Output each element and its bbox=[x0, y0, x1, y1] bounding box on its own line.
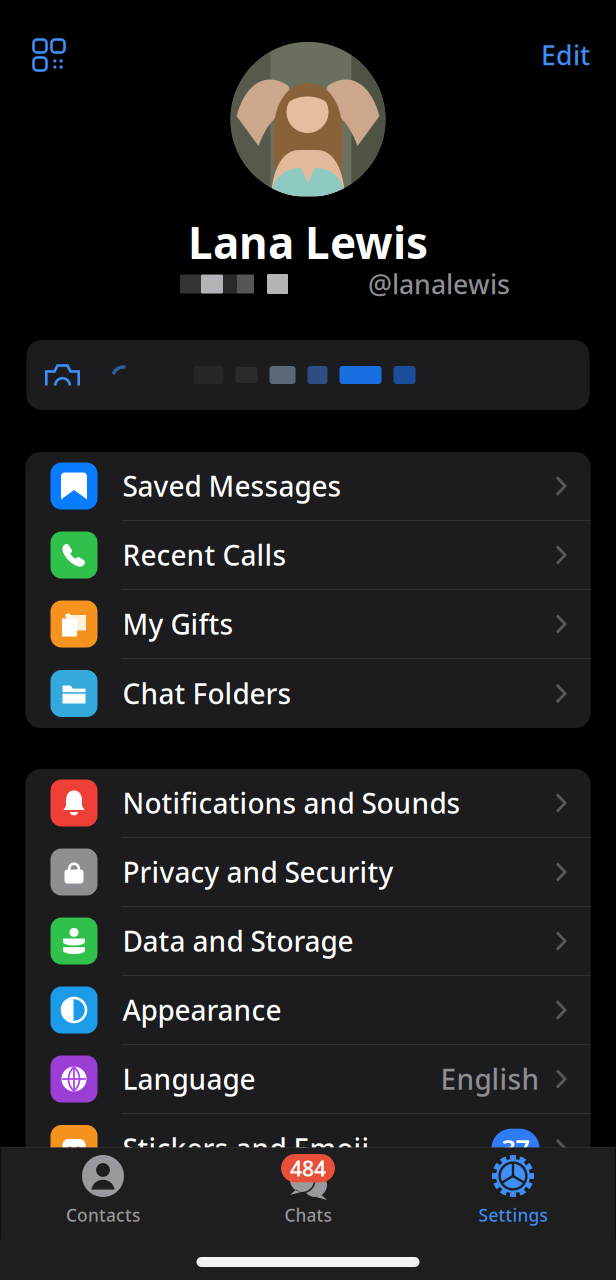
button[interactable]: Chat Folders bbox=[25, 659, 590, 728]
button[interactable]: My Gifts bbox=[25, 590, 590, 659]
button[interactable]: Settings bbox=[410, 1154, 615, 1239]
staticText: Language bbox=[122, 1060, 255, 1098]
staticText: @lanalewis bbox=[368, 266, 510, 302]
button[interactable]: Profile photo bbox=[230, 42, 385, 197]
button[interactable]: Language bbox=[25, 1045, 590, 1114]
staticText: Stickers and Emoji bbox=[122, 1130, 369, 1167]
button[interactable]: Appearance bbox=[25, 976, 590, 1045]
button[interactable]: 484 bbox=[205, 1154, 410, 1239]
staticText: Privacy and Security bbox=[122, 853, 393, 891]
staticText: 484 bbox=[290, 1154, 326, 1182]
staticText: Appearance bbox=[122, 991, 281, 1029]
staticText: Recent Calls bbox=[122, 536, 286, 574]
button[interactable]: QR code bbox=[27, 33, 71, 77]
button[interactable]: Notifications and Sounds bbox=[25, 769, 590, 838]
staticText: Edit bbox=[541, 37, 590, 73]
button[interactable]: Contacts bbox=[0, 1154, 205, 1239]
staticText: Saved Messages bbox=[122, 467, 341, 505]
staticText: Contacts bbox=[66, 1203, 140, 1226]
button[interactable]: Edit bbox=[541, 33, 590, 77]
button[interactable]: Stickers and Emoji bbox=[25, 1114, 590, 1183]
button[interactable]: Saved Messages bbox=[25, 452, 590, 521]
button[interactable]: Change photo bbox=[31, 340, 93, 410]
button[interactable]: Recent Calls bbox=[25, 521, 590, 590]
staticText: English bbox=[440, 1060, 539, 1098]
staticText: Chat Folders bbox=[122, 675, 291, 712]
button[interactable]: Edit photo bbox=[93, 340, 153, 410]
staticText: Lana Lewis bbox=[188, 213, 428, 271]
staticText: Data and Storage bbox=[122, 922, 353, 960]
staticText: Chats bbox=[284, 1203, 331, 1226]
button[interactable]: Privacy and Security bbox=[25, 838, 590, 907]
staticText: Settings bbox=[478, 1203, 547, 1226]
staticText: 37 bbox=[501, 1132, 529, 1165]
staticText: My Gifts bbox=[122, 605, 233, 643]
button[interactable]: Data and Storage bbox=[25, 907, 590, 976]
staticText: Notifications and Sounds bbox=[122, 784, 460, 822]
